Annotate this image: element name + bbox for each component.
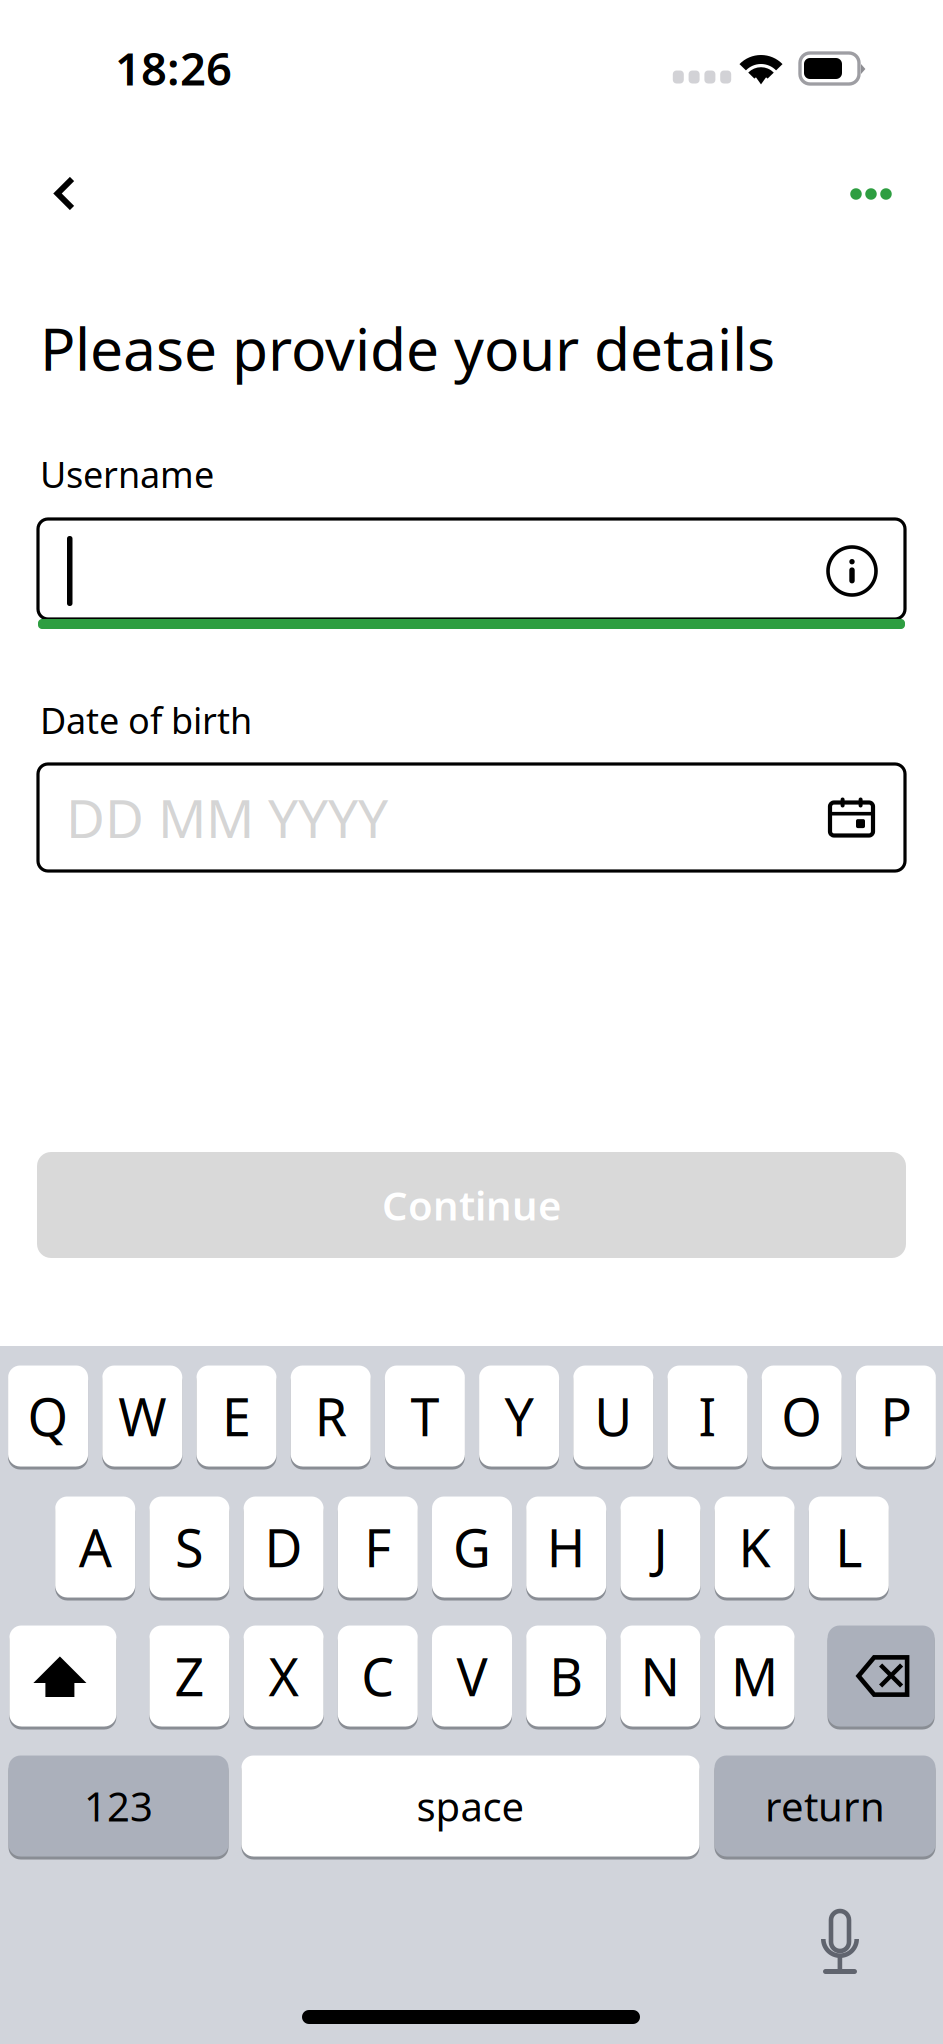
staticText: F (364, 1512, 391, 1582)
button[interactable]: P (856, 1365, 936, 1466)
staticText: I (698, 1381, 716, 1451)
button[interactable]: R (291, 1365, 371, 1466)
button[interactable]: A (55, 1496, 135, 1597)
staticText: S (175, 1512, 204, 1582)
button[interactable]: Shift (9, 1625, 116, 1726)
button[interactable]: I (667, 1365, 747, 1466)
staticText: Date of birth (40, 696, 252, 744)
staticText: O (781, 1381, 822, 1451)
button[interactable]: C (338, 1625, 418, 1726)
button[interactable]: W (102, 1365, 182, 1466)
staticText: 18:26 (115, 38, 232, 98)
staticText: P (880, 1381, 911, 1451)
button[interactable]: Dictation (817, 1911, 863, 1979)
button[interactable]: J (620, 1496, 700, 1597)
button[interactable]: O (762, 1365, 842, 1466)
button[interactable]: H (526, 1496, 606, 1597)
button[interactable]: return (714, 1755, 935, 1856)
staticText: E (222, 1381, 251, 1451)
staticText: space (416, 1779, 524, 1832)
staticText: C (361, 1641, 394, 1711)
button[interactable]: Z (149, 1625, 229, 1726)
button[interactable]: D (244, 1496, 324, 1597)
staticText: N (640, 1641, 680, 1711)
button[interactable]: L (809, 1496, 889, 1597)
button[interactable]: space (241, 1755, 699, 1856)
staticText: H (547, 1512, 586, 1582)
staticText: 123 (84, 1779, 153, 1832)
button[interactable]: K (715, 1496, 795, 1597)
button[interactable]: Delete (828, 1625, 935, 1726)
staticText: T (410, 1381, 439, 1451)
button[interactable]: G (432, 1496, 512, 1597)
button[interactable]: S (149, 1496, 229, 1597)
button[interactable]: F (338, 1496, 418, 1597)
button[interactable]: Y (479, 1365, 559, 1466)
staticText: M (731, 1641, 778, 1711)
staticText: R (315, 1381, 347, 1451)
button[interactable]: V (432, 1625, 512, 1726)
button[interactable]: More options (831, 158, 911, 230)
button[interactable]: DD MM YYYY (38, 764, 905, 871)
button[interactable]: X (244, 1625, 324, 1726)
button[interactable]: N (620, 1625, 700, 1726)
staticText: return (765, 1779, 885, 1832)
staticText: Q (28, 1381, 69, 1451)
staticText: DD MM YYYY (66, 782, 388, 853)
staticText: Y (505, 1381, 534, 1451)
staticText: X (269, 1641, 299, 1711)
staticText: A (79, 1512, 112, 1582)
staticText: G (453, 1512, 491, 1582)
staticText: Please provide your details (40, 309, 775, 387)
staticText: D (265, 1512, 303, 1582)
button[interactable]: Continue (37, 1152, 906, 1258)
staticText: Continue (382, 1178, 561, 1231)
staticText: J (653, 1512, 667, 1582)
button[interactable]: E (196, 1365, 276, 1466)
button[interactable]: B (526, 1625, 606, 1726)
staticText: Z (174, 1641, 204, 1711)
button[interactable]: T (385, 1365, 465, 1466)
button[interactable]: U (573, 1365, 653, 1466)
staticText: U (594, 1381, 632, 1451)
staticText: L (835, 1512, 862, 1582)
staticText: V (456, 1641, 487, 1711)
staticText: Username (40, 450, 214, 498)
button[interactable]: Back (30, 154, 100, 234)
button[interactable]: Q (8, 1365, 88, 1466)
staticText: B (549, 1641, 583, 1711)
button[interactable]: M (715, 1625, 795, 1726)
staticText: W (118, 1381, 166, 1451)
staticText: K (739, 1512, 771, 1582)
button[interactable]: 123 (8, 1755, 228, 1856)
